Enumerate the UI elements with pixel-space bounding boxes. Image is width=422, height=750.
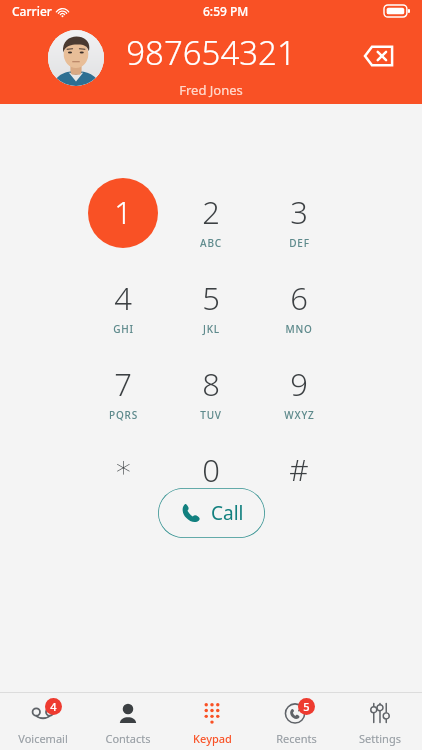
staticText: Keypad	[193, 731, 232, 746]
staticText: Contacts	[105, 731, 151, 746]
staticText: 987654321	[126, 30, 296, 75]
staticText: 1	[114, 191, 132, 233]
staticText: 4	[114, 277, 132, 319]
staticText: Fred Jones	[179, 81, 243, 99]
staticText: 0	[202, 449, 220, 491]
staticText: 3	[290, 191, 308, 233]
staticText: Recents	[276, 731, 317, 746]
staticText: MNO	[285, 322, 313, 336]
button[interactable]: Call	[158, 488, 265, 538]
button[interactable]: 3	[255, 178, 343, 262]
button[interactable]: ∗	[79, 436, 167, 520]
staticText: Settings	[359, 731, 401, 746]
button[interactable]: Contacts	[85, 693, 170, 750]
button[interactable]: #	[255, 436, 343, 520]
staticText: 4	[50, 699, 57, 714]
staticText: TUV	[200, 408, 222, 422]
staticText: ABC	[200, 236, 222, 250]
staticText: JKL	[203, 322, 220, 336]
staticText: Voicemail	[18, 731, 68, 746]
button[interactable]: 1	[79, 178, 167, 262]
staticText: 8	[202, 363, 220, 405]
button[interactable]: Keypad	[170, 693, 254, 750]
staticText: WXYZ	[284, 408, 315, 422]
staticText: DEF	[289, 236, 310, 250]
button[interactable]: 6	[255, 264, 343, 348]
staticText: 5	[303, 699, 310, 714]
button[interactable]: 2	[167, 178, 255, 262]
button[interactable]: Settings	[338, 693, 422, 750]
button[interactable]: 4	[0, 693, 85, 750]
staticText: 6:59 PM	[203, 3, 249, 19]
staticText: 5	[202, 277, 220, 319]
staticText: ∗	[114, 449, 133, 484]
button[interactable]: Backspace	[356, 34, 400, 78]
button[interactable]: 4	[79, 264, 167, 348]
button[interactable]: 0	[167, 436, 255, 520]
staticText: Call	[211, 500, 244, 526]
button[interactable]: 5	[254, 693, 338, 750]
staticText: 9	[290, 363, 308, 405]
staticText: 2	[202, 191, 220, 233]
staticText: PQRS	[109, 408, 138, 422]
button[interactable]: 8	[167, 350, 255, 434]
button[interactable]: 9	[255, 350, 343, 434]
staticText: 6	[290, 277, 308, 319]
button[interactable]: 5	[167, 264, 255, 348]
staticText: Carrier	[12, 3, 52, 19]
staticText: 7	[114, 363, 132, 405]
staticText: GHI	[113, 322, 134, 336]
staticText: #	[289, 449, 309, 490]
button[interactable]: 7	[79, 350, 167, 434]
